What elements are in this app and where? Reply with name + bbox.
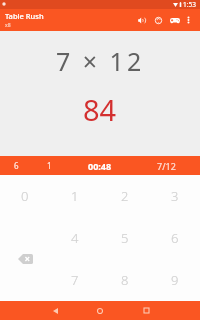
staticText: Table Rush [5,11,44,21]
staticText: 3 [171,187,179,205]
staticText: 1 [71,187,79,205]
staticText: 5 [121,229,129,247]
button[interactable]: Home [89,301,111,320]
staticText: 6 [14,160,19,171]
staticText: 4 [71,229,79,247]
button[interactable]: Back [44,301,66,320]
staticText: 6 [171,229,179,247]
staticText: 9 [171,271,179,289]
button[interactable]: 3 [150,175,200,217]
button[interactable]: Recents [135,301,157,320]
button[interactable]: 4 [50,217,100,259]
staticText: 84 [83,90,117,129]
button[interactable]: 8 [100,259,150,301]
button[interactable]: 2 [100,175,150,217]
button[interactable]: Games [167,9,183,31]
button[interactable]: 0 [0,175,50,217]
staticText: 7 [71,271,79,289]
button[interactable]: 6 [0,156,33,175]
button[interactable]: 1 [33,156,66,175]
staticText: 00:48 [88,160,112,172]
button[interactable]: More options [183,9,193,31]
button[interactable]: Sound [134,9,150,31]
staticText: x8 [5,22,11,29]
button[interactable]: 7/12 [133,156,200,175]
staticText: 7 × 12 [56,44,145,78]
button[interactable]: Backspace [0,217,50,301]
staticText: 1:53 [183,0,196,9]
staticText: 7/12 [157,160,176,172]
staticText: 0 [21,187,29,205]
staticText: 1 [47,160,52,171]
button[interactable]: 00:48 [66,156,133,175]
button[interactable]: 6 [150,217,200,259]
button[interactable]: 9 [150,259,200,301]
button[interactable]: 5 [100,217,150,259]
staticText: 2 [121,187,129,205]
button[interactable]: Hint [150,9,167,31]
staticText: 8 [121,271,129,289]
